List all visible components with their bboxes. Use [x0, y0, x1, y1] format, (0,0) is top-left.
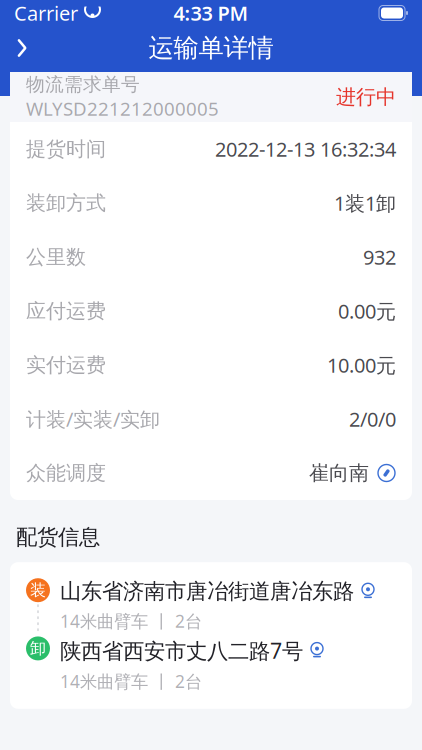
staticText: 装	[30, 580, 46, 600]
staticText: 14米曲臂车 丨 2台	[60, 670, 202, 693]
staticText: 0.00元	[338, 298, 396, 324]
staticText: 山东省济南市唐冶街道唐冶东路	[60, 578, 354, 604]
staticText: 陕西省西安市丈八二路7号	[60, 636, 303, 665]
staticText: 配货信息	[16, 524, 100, 550]
staticText: Carrier	[14, 0, 78, 26]
staticText: 2022-12-13 16:32:34	[215, 136, 396, 162]
staticText: 应付运费	[26, 299, 106, 323]
button[interactable]: 返回	[0, 28, 44, 68]
staticText: 2/0/0	[349, 406, 396, 432]
staticText: 14米曲臂车 丨 2台	[60, 609, 202, 632]
staticText: 实付运费	[26, 353, 106, 377]
staticText: 4:33 PM	[173, 0, 248, 26]
staticText: 10.00元	[327, 352, 396, 378]
staticText: 崔向南	[309, 461, 369, 485]
staticText: 运输单详情	[148, 32, 273, 63]
staticText: 932	[363, 244, 396, 270]
staticText: 物流需求单号 WLYSD221212000005	[26, 73, 219, 121]
staticText: 进行中	[336, 85, 396, 109]
staticText: 计装/实装/实卸	[26, 406, 160, 432]
staticText: 公里数	[26, 245, 86, 269]
staticText: 提货时间	[26, 137, 106, 161]
staticText: 卸	[30, 639, 46, 658]
staticText: 1装1卸	[334, 190, 396, 216]
staticText: 装卸方式	[26, 191, 106, 215]
staticText: 众能调度	[26, 461, 106, 485]
